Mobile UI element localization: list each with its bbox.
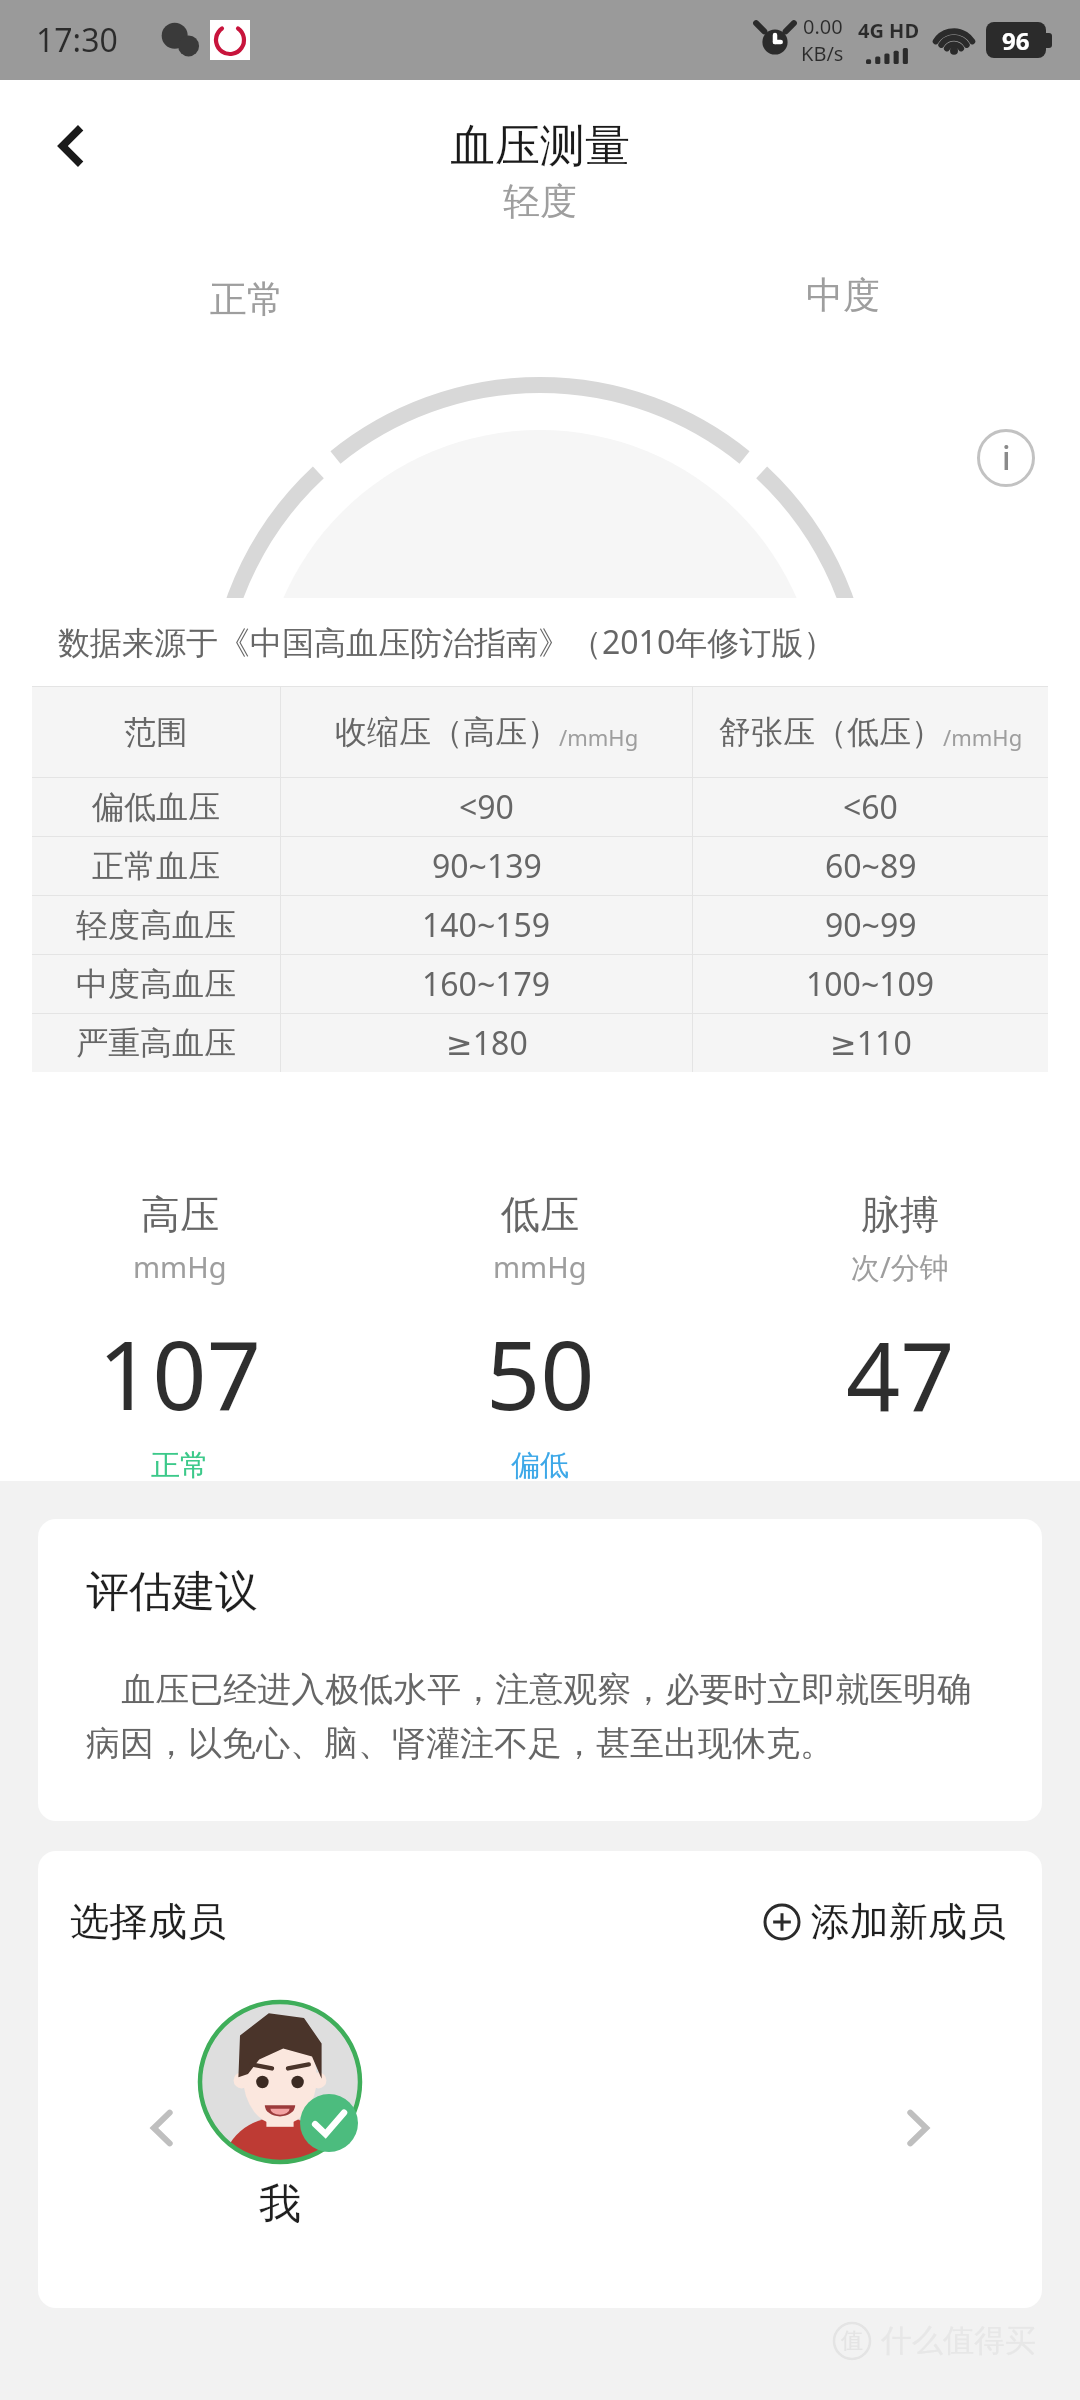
staticText: mmHg	[493, 1247, 587, 1286]
staticText: 17:30	[36, 18, 118, 62]
staticText: 正常	[210, 276, 284, 323]
staticText: 4G HD	[858, 17, 920, 44]
staticText: 严重高血压	[76, 1023, 236, 1063]
staticText: 值	[841, 2327, 863, 2355]
button[interactable]: 我	[198, 2000, 362, 2231]
staticText: 什么值得买	[881, 2321, 1036, 2360]
staticText: 140~159	[422, 903, 551, 947]
button[interactable]: 上一个成员	[126, 2092, 198, 2164]
staticText: 中度高血压	[76, 964, 236, 1004]
staticText: 偏低	[511, 1447, 569, 1481]
staticText: 中度	[806, 272, 880, 319]
staticText: 舒张压（低压）	[719, 712, 943, 752]
staticText: mmHg	[133, 1247, 227, 1286]
staticText: KB/s	[801, 40, 844, 67]
staticText: 脉搏	[861, 1190, 939, 1239]
staticText: 0.00	[803, 13, 843, 40]
staticText: /mmHg	[559, 722, 639, 752]
staticText: 90~99	[825, 903, 917, 947]
button[interactable]: 选择成员	[70, 1897, 226, 1946]
staticText: 正常	[151, 1447, 209, 1481]
staticText: 96	[1002, 24, 1030, 57]
staticText: 100~109	[806, 962, 935, 1006]
staticText: 107	[98, 1308, 262, 1437]
staticText: /mmHg	[943, 722, 1023, 752]
button[interactable]: 血压说明	[950, 402, 1062, 514]
button[interactable]: 添加新成员	[759, 1893, 1010, 1950]
staticText: 偏低血压	[92, 787, 220, 827]
button[interactable]: 下一个成员	[882, 2092, 954, 2164]
staticText: 血压已经进入极低水平，注意观察，必要时立即就医明确病因，以免心、脑、肾灌注不足，…	[86, 1665, 1002, 1765]
staticText: 160~179	[422, 962, 551, 1006]
staticText: i	[1002, 436, 1011, 480]
staticText: 范围	[124, 712, 188, 752]
staticText: <90	[459, 785, 514, 829]
staticText: ≥110	[830, 1021, 912, 1065]
staticText: 添加新成员	[811, 1897, 1006, 1946]
staticText: 90~139	[432, 844, 542, 888]
staticText: <60	[843, 785, 898, 829]
staticText: ≥180	[446, 1021, 528, 1065]
staticText: 次/分钟	[851, 1247, 949, 1287]
button[interactable]: 返回	[24, 98, 120, 194]
staticText: 轻度高血压	[76, 905, 236, 945]
staticText: 正常血压	[92, 846, 220, 886]
staticText: 47	[846, 1309, 955, 1438]
staticText: 评估建议	[86, 1565, 258, 1619]
staticText: 数据来源于《中国高血压防治指南》（2010年修订版）	[58, 620, 836, 664]
staticText: 60~89	[825, 844, 917, 888]
staticText: 高压	[141, 1190, 219, 1239]
staticText: 低压	[501, 1190, 579, 1239]
staticText: 50	[486, 1308, 595, 1437]
staticText: 收缩压（高压）	[335, 712, 559, 752]
staticText: 我	[259, 2178, 301, 2231]
staticText: 血压测量	[450, 118, 630, 175]
staticText: 选择成员	[70, 1897, 226, 1946]
staticText: 轻度	[503, 178, 577, 225]
